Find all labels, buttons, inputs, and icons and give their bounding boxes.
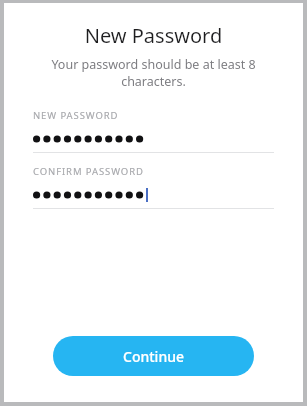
staticText: New Password (4, 22, 303, 49)
staticText: CONFIRM PASSWORD (33, 165, 144, 178)
staticText: Your password should be at least 8 chara… (28, 56, 279, 90)
button[interactable]: CONFIRM PASSWORD (33, 165, 274, 209)
staticText: Continue (123, 347, 184, 366)
button[interactable]: Continue (53, 336, 254, 376)
button[interactable]: NEW PASSWORD (33, 109, 274, 153)
staticText: NEW PASSWORD (33, 109, 119, 122)
